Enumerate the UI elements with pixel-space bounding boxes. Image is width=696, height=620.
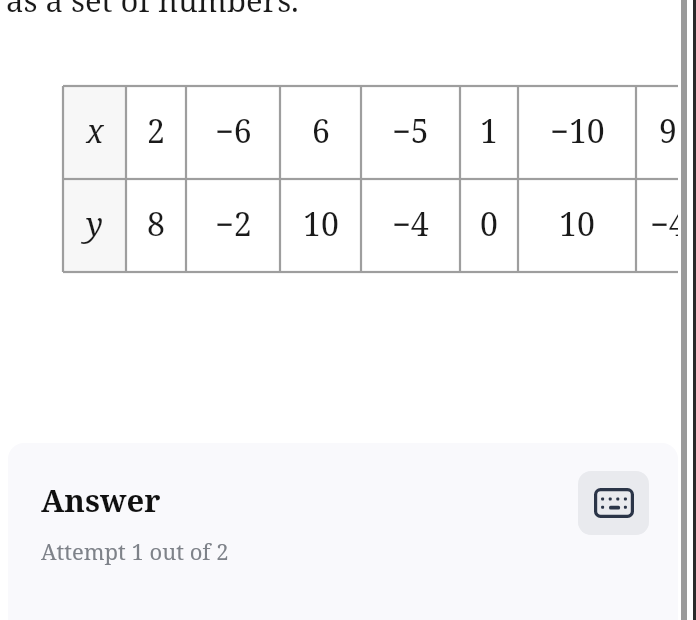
button[interactable]: Show keyboard bbox=[578, 471, 649, 535]
staticText: 1 bbox=[480, 109, 498, 153]
staticText: 0 bbox=[480, 202, 498, 246]
staticText: 6 bbox=[312, 109, 330, 153]
staticText: x bbox=[86, 109, 104, 153]
staticText: −10 bbox=[550, 109, 605, 153]
staticText: 9 bbox=[659, 109, 677, 153]
staticText: −2 bbox=[215, 202, 252, 246]
staticText: −4 bbox=[650, 202, 687, 246]
staticText: as a set of numbers. bbox=[6, 0, 299, 21]
staticText: y bbox=[86, 202, 103, 246]
staticText: Answer bbox=[41, 479, 161, 521]
staticText: 10 bbox=[559, 202, 595, 246]
staticText: 10 bbox=[303, 202, 339, 246]
staticText: −4 bbox=[392, 202, 429, 246]
staticText: −5 bbox=[392, 109, 429, 153]
staticText: 8 bbox=[147, 202, 165, 246]
staticText: −6 bbox=[215, 109, 252, 153]
staticText: 2 bbox=[147, 109, 165, 153]
staticText: Attempt 1 out of 2 bbox=[41, 536, 229, 566]
